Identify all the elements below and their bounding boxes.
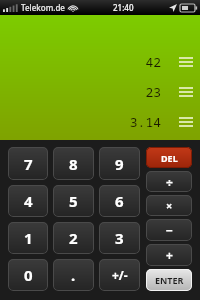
staticText: 7	[24, 154, 33, 174]
staticText: 4	[24, 191, 33, 211]
button[interactable]: 9	[99, 147, 140, 180]
staticText: 8	[69, 154, 78, 174]
staticText: 5	[69, 191, 78, 211]
staticText: 6	[115, 191, 124, 211]
staticText: 2	[69, 228, 78, 248]
button[interactable]: 2	[53, 222, 94, 254]
button[interactable]: .	[53, 259, 94, 291]
button[interactable]: +/-	[99, 259, 140, 291]
button[interactable]: Multiply	[146, 195, 192, 216]
staticText: .	[71, 265, 76, 285]
staticText: DEL	[161, 152, 178, 164]
button[interactable]: 3.14	[0, 107, 200, 136]
button[interactable]: Subtract	[146, 219, 192, 241]
button[interactable]: DEL	[146, 147, 192, 168]
button[interactable]: 3	[99, 222, 140, 254]
button[interactable]: 6	[99, 185, 140, 217]
button[interactable]: 0	[8, 259, 48, 291]
button[interactable]: 4	[8, 185, 48, 217]
staticText: ×	[166, 198, 173, 213]
staticText: 42	[0, 53, 161, 71]
staticText: 23	[0, 83, 161, 101]
staticText: ENTER	[155, 274, 184, 286]
button[interactable]: 8	[53, 147, 94, 180]
staticText: 9	[115, 154, 124, 174]
staticText: 0	[24, 265, 33, 285]
button[interactable]: 1	[8, 222, 48, 254]
button[interactable]: Divide	[146, 171, 192, 192]
staticText: 3	[115, 228, 124, 248]
staticText: +/-	[112, 267, 128, 283]
button[interactable]: 23	[0, 77, 200, 106]
staticText: Telekom.de	[21, 2, 65, 13]
button[interactable]: ENTER	[146, 269, 192, 291]
staticText: 1	[24, 228, 33, 248]
button[interactable]: Add	[146, 244, 192, 266]
button[interactable]: 42	[0, 47, 200, 76]
staticText: ÷	[166, 174, 173, 190]
staticText: −	[166, 222, 173, 238]
button[interactable]: 5	[53, 185, 94, 217]
staticText: 3.14	[0, 113, 161, 131]
staticText: 21:40	[113, 2, 134, 13]
staticText: +	[166, 247, 173, 263]
button[interactable]: 7	[8, 147, 48, 180]
